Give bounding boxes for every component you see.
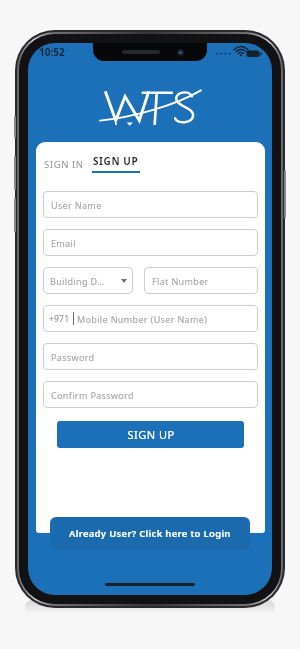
button[interactable]: Email — [43, 229, 258, 256]
button[interactable]: Confirm Password — [43, 381, 258, 408]
staticText: 10:52 — [39, 45, 65, 59]
staticText: +971 — [49, 313, 70, 325]
staticText: User Name — [51, 199, 102, 211]
button[interactable]: SIGN UP — [92, 154, 140, 173]
button[interactable]: SIGN IN — [43, 156, 85, 173]
staticText: Flat Number — [152, 275, 209, 287]
button[interactable]: SIGN UP — [57, 421, 244, 448]
staticText: Email — [51, 237, 76, 249]
staticText: Already User? Click here to Login — [69, 527, 231, 540]
button[interactable]: Password — [43, 343, 258, 370]
staticText: Confirm Password — [51, 389, 134, 401]
button[interactable]: +971 — [43, 305, 258, 332]
staticText: SIGN UP — [93, 154, 139, 168]
staticText: Password — [51, 351, 95, 363]
staticText: SIGN UP — [127, 427, 175, 442]
staticText: Building D… — [50, 275, 105, 287]
button[interactable]: Building D… — [43, 267, 133, 294]
button[interactable]: Already User? Click here to Login — [50, 517, 250, 550]
staticText: Mobile Number (User Name) — [77, 313, 208, 325]
button[interactable]: Flat Number — [144, 267, 258, 294]
staticText: SIGN IN — [44, 158, 84, 171]
button[interactable]: User Name — [43, 191, 258, 218]
